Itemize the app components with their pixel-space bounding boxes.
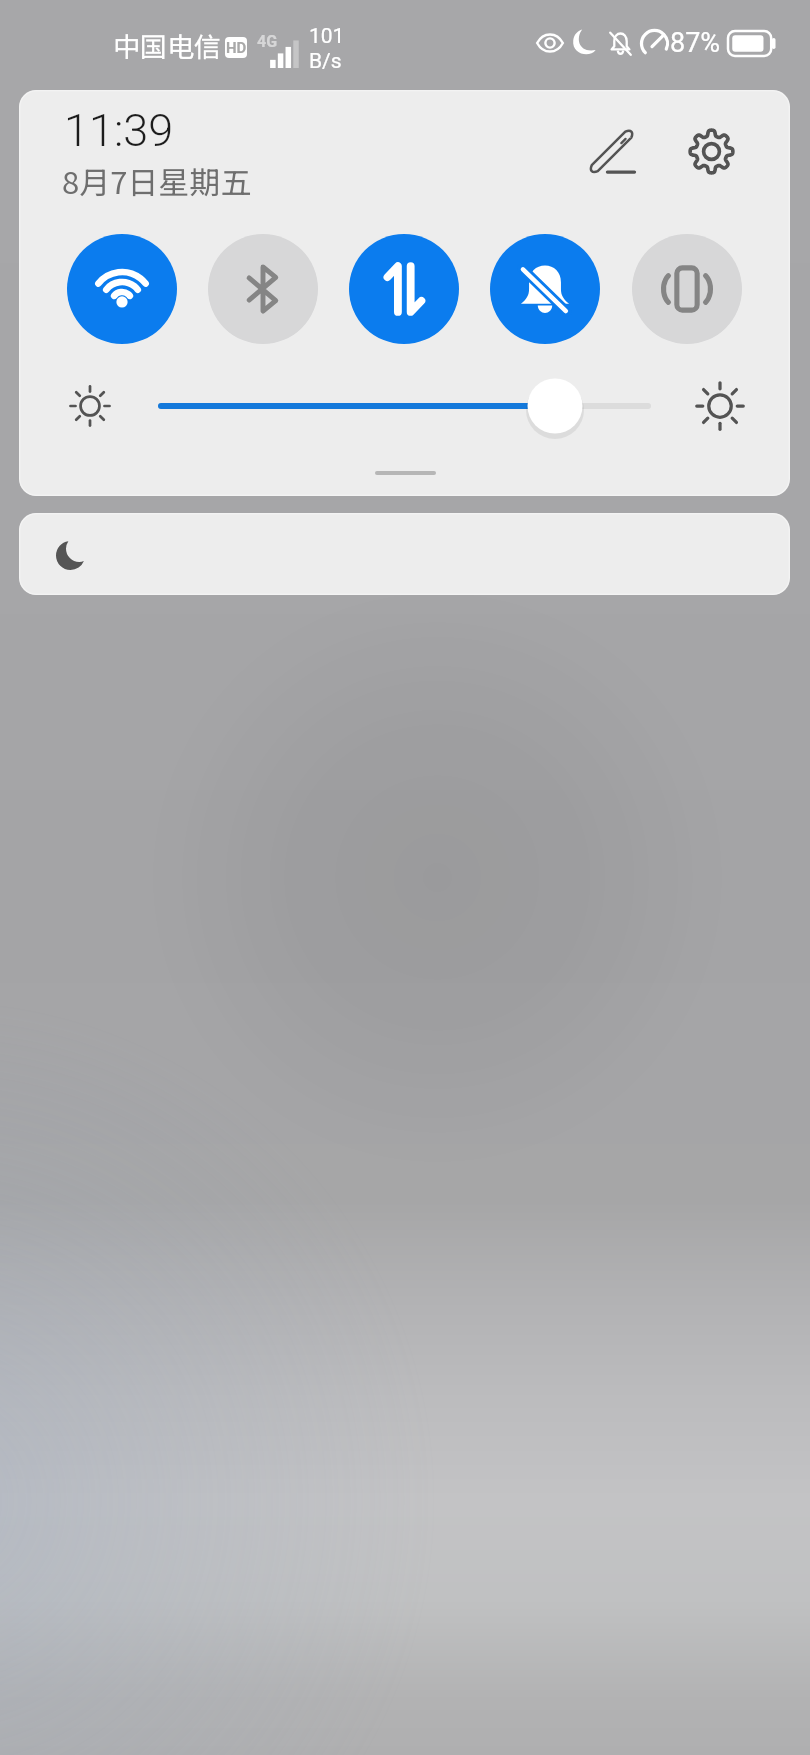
button[interactable] xyxy=(19,513,790,595)
staticText: 101 xyxy=(309,24,345,49)
button[interactable]: Brightness xyxy=(149,376,679,436)
button[interactable]: Wi-Fi xyxy=(67,234,177,344)
staticText: HD xyxy=(226,39,247,57)
button[interactable]: Mobile data xyxy=(349,234,459,344)
staticText: 中国电信 xyxy=(113,26,221,65)
button[interactable]: Edit quick settings xyxy=(568,106,656,194)
staticText: 8月7日星期五 xyxy=(62,158,252,203)
button[interactable]: Silent mode xyxy=(490,234,600,344)
staticText: 87% xyxy=(670,27,721,59)
button[interactable]: Bluetooth xyxy=(208,234,318,344)
staticText: 4G xyxy=(257,32,278,51)
button[interactable]: Expand quick settings xyxy=(345,441,466,485)
staticText: B/s xyxy=(309,49,342,74)
button[interactable]: Settings xyxy=(667,107,755,195)
staticText: 11:39 xyxy=(64,104,174,157)
button[interactable]: Vibrate xyxy=(632,234,742,344)
